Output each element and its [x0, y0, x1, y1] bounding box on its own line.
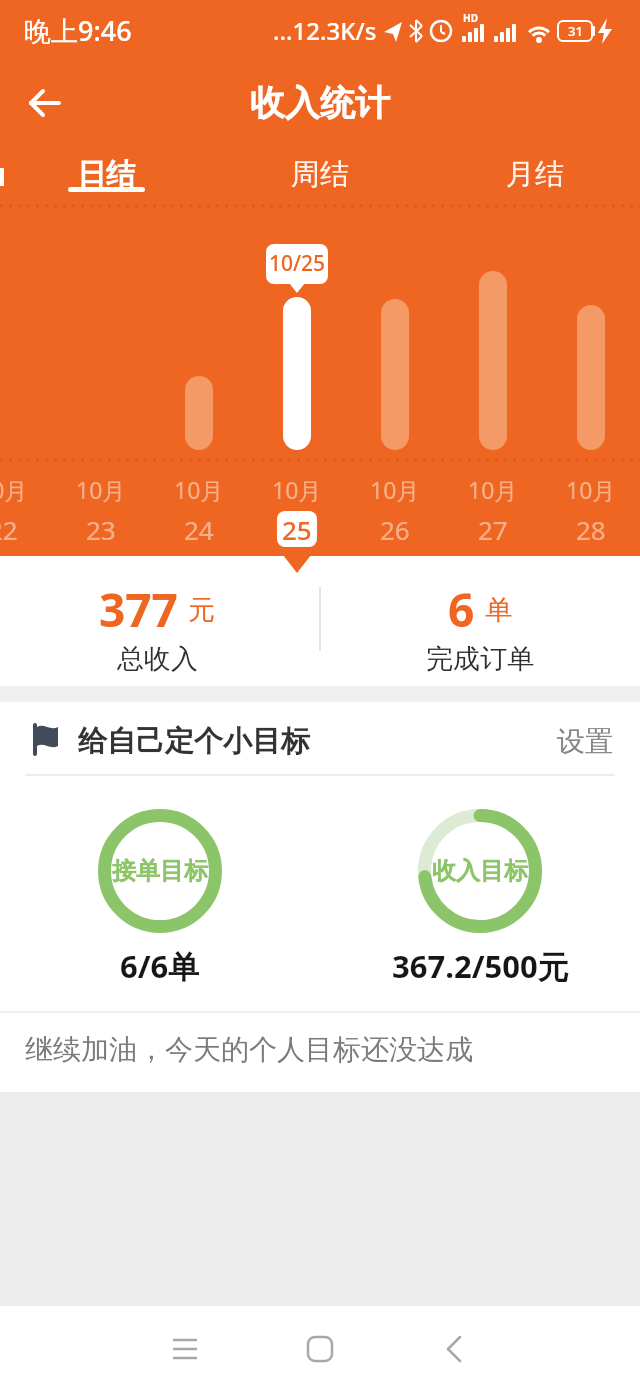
staticText: 给自己定个小目标	[78, 723, 310, 760]
staticText: 25	[282, 512, 312, 547]
staticText: 10月	[76, 474, 126, 505]
staticText: 27	[478, 512, 508, 547]
staticText: 接单目标	[112, 856, 208, 886]
staticText: 26	[380, 512, 410, 547]
staticText: 单	[485, 593, 512, 627]
button[interactable]: 周结	[280, 148, 360, 200]
button[interactable]	[145, 1310, 225, 1387]
staticText: 设置	[557, 724, 613, 759]
staticText: 10月	[174, 474, 224, 505]
staticText: 24	[184, 512, 214, 547]
staticText: 367.2/500元	[392, 945, 569, 987]
staticText: 元	[188, 593, 215, 627]
staticText: 收入统计	[250, 81, 390, 125]
staticText: 晚上9:46	[24, 12, 132, 49]
staticText: 10/25	[269, 249, 326, 278]
staticText: 10月	[468, 474, 518, 505]
staticText: 10月	[272, 474, 322, 505]
staticText: 28	[576, 512, 606, 547]
staticText: 10月	[370, 474, 420, 505]
staticText: 完成订单	[426, 642, 534, 676]
staticText: 10月	[0, 474, 28, 505]
staticText: 31	[568, 22, 583, 40]
staticText: 6/6单	[120, 945, 200, 987]
staticText: HD	[463, 11, 478, 25]
staticText: 377	[99, 578, 178, 641]
button[interactable]	[15, 75, 75, 131]
staticText: 23	[86, 512, 116, 547]
staticText: 22	[0, 512, 18, 547]
staticText: 月结	[506, 156, 564, 193]
button[interactable]	[280, 1310, 360, 1387]
staticText: 周结	[291, 156, 349, 193]
staticText: 10月	[566, 474, 616, 505]
staticText: 继续加油，今天的个人目标还没达成	[25, 1032, 473, 1067]
staticText: 总收入	[117, 642, 198, 676]
button[interactable]: 月结	[495, 148, 575, 200]
staticText: 6	[448, 578, 475, 641]
button[interactable]	[415, 1310, 495, 1387]
staticText: 收入目标	[432, 856, 528, 886]
button[interactable]: 设置	[545, 715, 625, 767]
staticText: ...12.3K/s	[273, 14, 377, 47]
staticText: 日结	[77, 156, 135, 193]
button[interactable]: 日结	[66, 148, 146, 200]
